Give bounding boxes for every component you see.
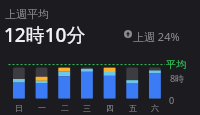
staticText: 四 bbox=[106, 103, 114, 113]
staticText: 8時 bbox=[170, 72, 185, 84]
staticText: 一 bbox=[38, 103, 46, 113]
button[interactable]: Increase from last week bbox=[124, 30, 132, 38]
staticText: 日 bbox=[15, 103, 23, 113]
staticText: 三 bbox=[83, 103, 91, 113]
staticText: 上週 24% bbox=[133, 29, 180, 44]
staticText: 平均 bbox=[166, 58, 186, 71]
staticText: 二 bbox=[61, 103, 69, 113]
staticText: 六 bbox=[151, 103, 159, 113]
staticText: 五 bbox=[129, 103, 137, 113]
staticText: 上週平均 bbox=[5, 7, 49, 21]
staticText: 12時10分 bbox=[4, 22, 86, 48]
staticText: 0 bbox=[169, 94, 175, 106]
